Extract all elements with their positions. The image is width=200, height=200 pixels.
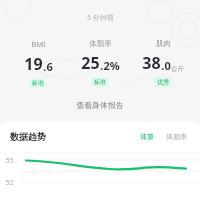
- staticText: 体重: [140, 132, 154, 141]
- staticText: .2%: [100, 58, 120, 73]
- staticText: 标准: [32, 79, 44, 87]
- button[interactable]: 体脂率: [69, 39, 131, 87]
- staticText: 标准: [94, 78, 106, 86]
- staticText: .6: [43, 59, 53, 74]
- staticText: 体脂率: [166, 132, 187, 141]
- button[interactable]: 肌肉: [132, 39, 194, 87]
- staticText: 38: [142, 52, 161, 74]
- staticText: 优秀: [157, 78, 169, 86]
- staticText: 体脂率: [89, 39, 112, 48]
- button[interactable]: 体脂率: [163, 130, 190, 143]
- staticText: 52: [5, 178, 14, 188]
- button[interactable]: 体重: [137, 130, 157, 143]
- staticText: 查看身体报告: [76, 100, 124, 110]
- staticText: .0: [161, 58, 171, 73]
- staticText: 数据趋势: [10, 131, 46, 142]
- staticText: BMI: [31, 39, 46, 49]
- staticText: 25: [81, 52, 100, 74]
- button[interactable]: BMI: [7, 39, 69, 88]
- staticText: 55: [5, 156, 14, 166]
- staticText: 19: [24, 53, 43, 75]
- staticText: 肌肉: [156, 39, 171, 48]
- staticText: 5 分钟前: [87, 13, 114, 23]
- staticText: 公斤: [171, 65, 184, 73]
- button[interactable]: 查看身体报告: [0, 100, 200, 110]
